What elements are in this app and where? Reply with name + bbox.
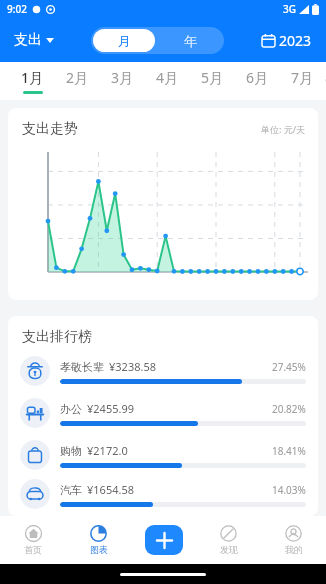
- staticText: 汽车: [60, 483, 82, 497]
- button[interactable]: 5月: [190, 62, 235, 100]
- staticText: 单位: 元/天: [261, 123, 306, 135]
- staticText: 8: [325, 68, 326, 87]
- staticText: 14.03%: [272, 483, 306, 497]
- staticText: ¥2455.99: [87, 401, 134, 416]
- staticText: 月: [118, 33, 131, 49]
- button[interactable]: 汽车: [8, 476, 318, 512]
- staticText: 3月: [111, 68, 134, 87]
- staticText: ¥3238.58: [109, 359, 156, 374]
- staticText: 孝敬长辈: [60, 360, 104, 374]
- button[interactable]: 月: [93, 29, 155, 52]
- button[interactable]: 支出: [12, 28, 56, 52]
- staticText: 1月: [21, 68, 44, 87]
- staticText: 支出排行榜: [22, 328, 92, 346]
- button[interactable]: 8: [325, 62, 326, 100]
- staticText: 7月: [291, 68, 314, 87]
- button[interactable]: 7月: [280, 62, 325, 100]
- staticText: 6月: [246, 68, 269, 87]
- button[interactable]: 图表: [66, 516, 131, 564]
- button[interactable]: 购物: [8, 434, 318, 476]
- staticText: 发现: [220, 544, 238, 555]
- button[interactable]: 发现: [196, 516, 261, 564]
- button[interactable]: 孝敬长辈: [8, 350, 318, 392]
- button[interactable]: 3月: [100, 62, 145, 100]
- staticText: ¥2172.0: [87, 443, 128, 458]
- staticText: 购物: [60, 444, 82, 458]
- staticText: 图表: [90, 544, 108, 555]
- button[interactable]: 办公: [8, 392, 318, 434]
- button[interactable]: 1月: [10, 62, 55, 100]
- staticText: 年: [184, 33, 197, 49]
- button[interactable]: 年: [157, 27, 224, 54]
- staticText: 2月: [66, 68, 89, 87]
- button[interactable]: 2023: [260, 28, 314, 53]
- staticText: 4月: [156, 68, 179, 87]
- staticText: 办公: [60, 402, 82, 416]
- staticText: 27.45%: [272, 360, 306, 374]
- staticText: ¥1654.58: [87, 482, 134, 497]
- staticText: 首页: [24, 544, 42, 555]
- button[interactable]: Add: [145, 525, 183, 555]
- staticText: 9:02: [7, 2, 27, 16]
- button[interactable]: 首页: [0, 516, 66, 564]
- staticText: 支出: [14, 31, 42, 49]
- button[interactable]: 4月: [145, 62, 190, 100]
- button[interactable]: 6月: [235, 62, 280, 100]
- staticText: 2023: [279, 31, 312, 50]
- staticText: 18.41%: [272, 444, 306, 458]
- staticText: 3G: [283, 2, 296, 16]
- staticText: 20.82%: [272, 402, 306, 416]
- button[interactable]: 2月: [55, 62, 100, 100]
- staticText: 5月: [201, 68, 224, 87]
- button[interactable]: 我的: [261, 516, 326, 564]
- staticText: 支出走势: [22, 120, 78, 138]
- staticText: 我的: [285, 544, 303, 555]
